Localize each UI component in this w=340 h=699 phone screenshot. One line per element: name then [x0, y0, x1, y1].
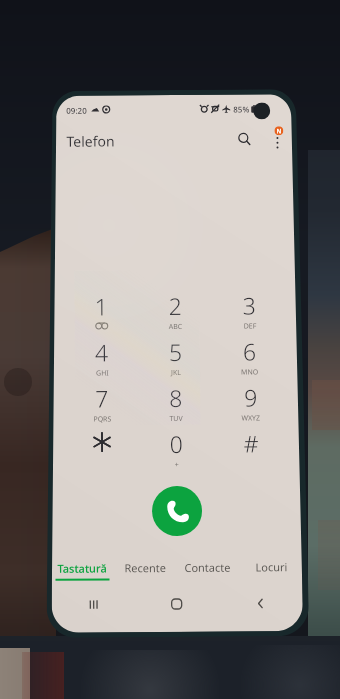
button[interactable]: More options — [265, 127, 290, 151]
staticText: 2 — [168, 290, 183, 321]
staticText: 4 — [95, 336, 109, 368]
staticText: Recente — [124, 560, 166, 575]
staticText: 09:20 — [66, 105, 87, 116]
button[interactable]: 6 — [213, 335, 287, 382]
staticText: WXYZ — [241, 413, 260, 423]
staticText: N — [276, 127, 281, 135]
staticText: 0 — [169, 428, 184, 459]
button[interactable]: Recents — [52, 588, 135, 621]
button[interactable]: 4 — [64, 336, 139, 383]
staticText: PQRS — [93, 414, 111, 425]
button[interactable]: Home — [135, 588, 219, 620]
button[interactable]: Back — [219, 587, 303, 620]
button[interactable]: Call — [152, 486, 202, 536]
button[interactable]: 2 — [138, 290, 213, 336]
button[interactable]: Locuri — [239, 559, 302, 577]
staticText: + — [175, 460, 180, 470]
staticText: 85% — [233, 103, 249, 115]
staticText: 9 — [244, 381, 258, 412]
staticText: Tastatură — [57, 560, 107, 576]
button[interactable] — [64, 428, 140, 475]
staticText: Contacte — [184, 560, 231, 575]
button[interactable]: # — [213, 427, 288, 474]
staticText: Locuri — [255, 559, 287, 574]
button[interactable]: 5 — [139, 336, 213, 382]
staticText: 7 — [95, 382, 109, 414]
staticText: TUV — [169, 414, 183, 424]
button[interactable]: 0 — [139, 428, 214, 474]
button[interactable]: 3 — [212, 289, 287, 336]
button[interactable]: Recente — [113, 560, 176, 578]
button[interactable]: 1 — [63, 290, 139, 337]
button[interactable]: 8 — [139, 382, 213, 428]
staticText: DEF — [244, 321, 257, 331]
staticText: ABC — [169, 322, 183, 332]
button[interactable]: Contacte — [176, 560, 239, 578]
staticText: # — [243, 427, 259, 458]
staticText: Telefon — [66, 131, 115, 151]
button[interactable]: 9 — [213, 381, 287, 428]
staticText: MNO — [241, 367, 259, 377]
button[interactable]: Tastatură — [51, 560, 113, 581]
staticText: 5 — [169, 336, 183, 367]
staticText: 6 — [243, 335, 257, 366]
staticText: 1 — [94, 290, 109, 322]
button[interactable]: 7 — [64, 382, 139, 429]
staticText: GHI — [96, 368, 109, 379]
staticText: 8 — [169, 382, 183, 413]
staticText: 3 — [242, 289, 257, 320]
button[interactable]: Search — [231, 126, 258, 153]
staticText: JKL — [171, 368, 181, 378]
